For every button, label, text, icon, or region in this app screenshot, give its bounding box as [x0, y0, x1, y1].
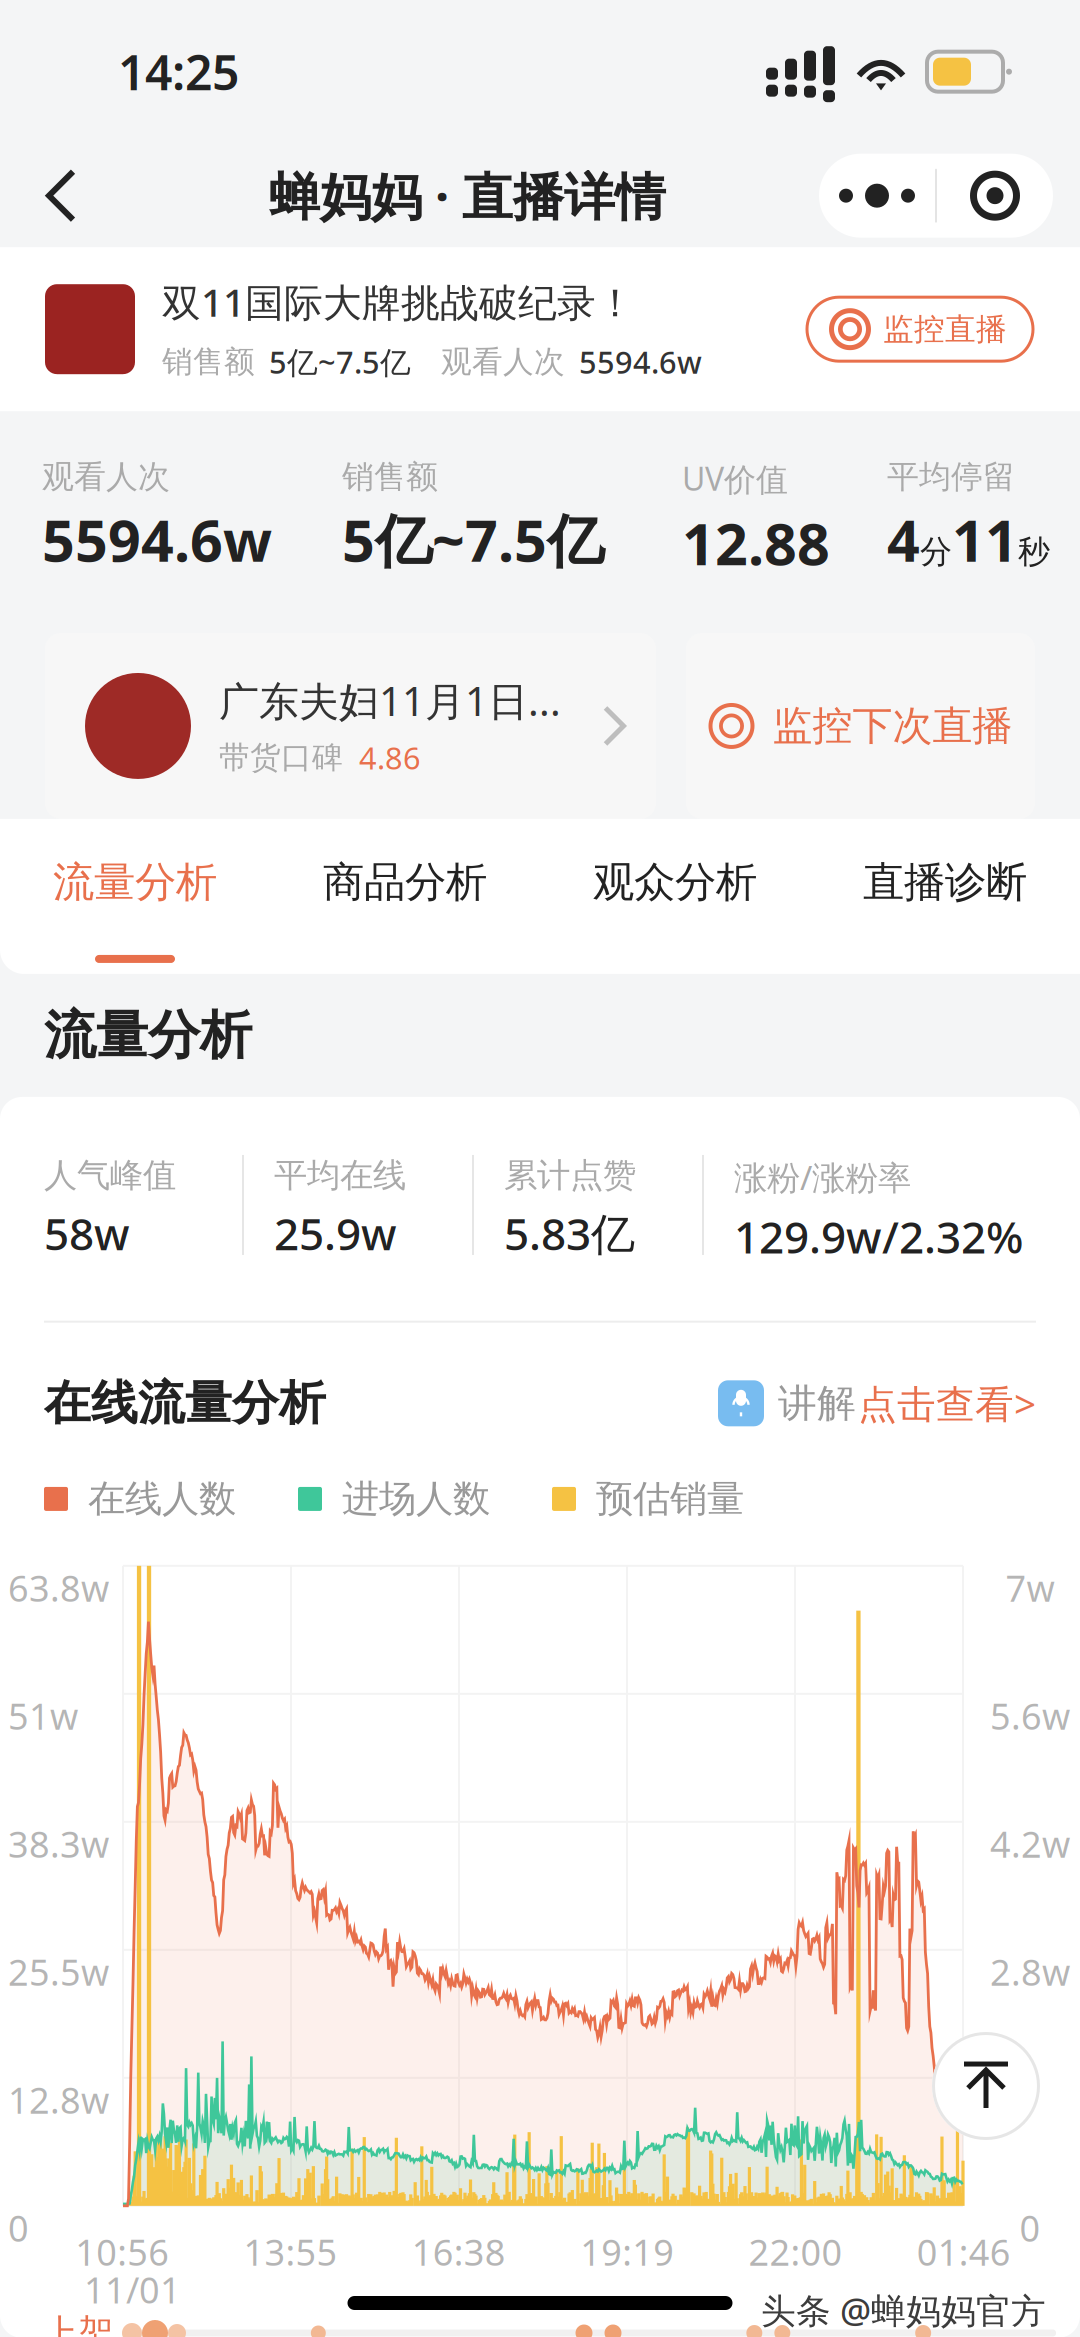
staticText: 平均停留 [887, 457, 1015, 496]
staticText: 监控下次直播 [772, 701, 1012, 750]
staticText: 分 [920, 532, 952, 572]
staticText: 直播诊断 [863, 857, 1027, 908]
staticText: 01:46 [917, 2228, 1011, 2276]
staticText: 14:25 [118, 40, 239, 103]
staticText: 0 [1019, 2204, 1040, 2252]
staticText: 51w [8, 1692, 78, 1740]
staticText: 人气峰值 [44, 1155, 176, 1196]
staticText: 累计点赞 [504, 1155, 636, 1196]
button[interactable]: Scroll to top [932, 2032, 1040, 2140]
button[interactable]: 讲解 [718, 1378, 1036, 1429]
staticText: 双11国际大牌挑战破纪录！ [162, 276, 635, 327]
staticText: 在线流量分析 [44, 1375, 326, 1432]
staticText: 点击查看> [858, 1378, 1036, 1429]
button[interactable]: 广东夫妇11月1日... [45, 633, 656, 819]
staticText: 商品分析 [323, 857, 487, 908]
staticText: 带货口碑 [219, 739, 343, 776]
staticText: UV价值 [682, 457, 788, 500]
staticText: 销售额 [162, 343, 255, 381]
staticText: 5亿~7.5亿 [342, 501, 604, 578]
staticText: 4.2w [990, 1820, 1070, 1868]
staticText: 7w [1005, 1564, 1054, 1612]
staticText: 观看人次 [42, 457, 170, 496]
staticText: 38.3w [8, 1820, 109, 1868]
staticText: 观看人次 [441, 343, 565, 381]
button[interactable]: Close [937, 154, 1053, 238]
staticText: 监控直播 [883, 310, 1007, 348]
button[interactable]: 监控直播 [807, 297, 1033, 361]
staticText: 秒 [1018, 532, 1050, 572]
staticText: 销售额 [342, 457, 438, 496]
button[interactable]: 监控下次直播 [686, 633, 1035, 819]
staticText: 头条 @蝉妈妈官方 [761, 2287, 1046, 2333]
staticText: 在线人数 [88, 1476, 236, 1522]
staticText: 讲解 [778, 1380, 856, 1427]
staticText: 流量分析 [44, 1003, 252, 1067]
staticText: 63.8w [8, 1564, 109, 1612]
button[interactable]: 流量分析 [0, 857, 270, 963]
button[interactable]: Back [6, 144, 116, 248]
button[interactable]: 商品分析 [270, 857, 540, 963]
staticText: 预估销量 [596, 1476, 744, 1522]
staticText: 进场人数 [342, 1476, 490, 1522]
staticText: 广东夫妇11月1日... [219, 674, 561, 727]
staticText: 22:00 [748, 2228, 842, 2276]
button[interactable]: 直播诊断 [810, 857, 1080, 963]
staticText: 平均在线 [274, 1155, 406, 1196]
staticText: 2.8w [990, 1948, 1070, 1996]
staticText: 58w [44, 1204, 130, 1262]
staticText: 12.88 [682, 505, 830, 581]
staticText: 5594.6w [42, 501, 272, 578]
staticText: 4.86 [359, 737, 421, 778]
staticText: 5.6w [990, 1692, 1070, 1740]
button[interactable]: More [819, 154, 935, 238]
staticText: 25.9w [274, 1204, 397, 1262]
staticText: 129.9w/2.32% [734, 1207, 1023, 1266]
staticText: 5.83亿 [504, 1204, 635, 1262]
staticText: 5亿~7.5亿 [269, 341, 411, 382]
staticText: 10:56 [75, 2228, 169, 2276]
button[interactable]: 观众分析 [540, 857, 810, 963]
staticText: 上架 [42, 2311, 114, 2337]
staticText: 16:38 [412, 2228, 506, 2276]
staticText: 4 [887, 501, 920, 578]
staticText: 12.8w [8, 2076, 109, 2124]
staticText: 13:55 [243, 2228, 337, 2276]
staticText: 11 [952, 501, 1018, 578]
staticText: 5594.6w [579, 341, 702, 382]
staticText: 19:19 [580, 2228, 674, 2276]
staticText: 流量分析 [53, 857, 217, 908]
staticText: 11/01 [84, 2266, 181, 2313]
staticText: 涨粉/涨粉率 [734, 1155, 911, 1199]
staticText: 蝉妈妈 · 直播详情 [269, 162, 666, 229]
staticText: 0 [8, 2204, 29, 2252]
staticText: 观众分析 [593, 857, 757, 908]
staticText: 25.5w [8, 1948, 109, 1996]
